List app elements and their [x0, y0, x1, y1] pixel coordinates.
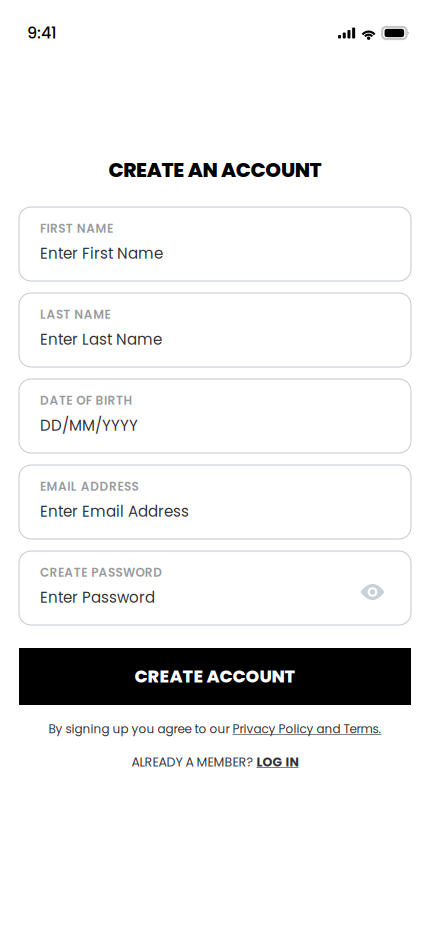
- button[interactable]: EMAIL ADDRESS: [19, 465, 411, 539]
- button[interactable]: FIRST NAME: [19, 207, 411, 281]
- staticText: Enter Email Address: [40, 501, 189, 522]
- staticText: 9:41: [27, 22, 57, 44]
- button[interactable]: Privacy Policy and Terms.: [232, 721, 381, 737]
- staticText: Privacy Policy and Terms.: [232, 721, 381, 737]
- button[interactable]: CREATE PASSWORD: [19, 551, 411, 625]
- button[interactable]: CREATE ACCOUNT: [19, 648, 411, 705]
- staticText: Enter Password: [40, 587, 155, 608]
- staticText: FIRST NAME: [40, 220, 113, 237]
- button[interactable]: LAST NAME: [19, 293, 411, 367]
- staticText: CREATE AN ACCOUNT: [108, 156, 321, 184]
- staticText: DATE OF BIRTH: [40, 392, 132, 409]
- staticText: By signing up you agree to our: [48, 721, 232, 737]
- button[interactable]: DATE OF BIRTH: [19, 379, 411, 453]
- staticText: LOG IN: [256, 753, 298, 771]
- staticText: Enter Last Name: [40, 329, 162, 350]
- staticText: CREATE PASSWORD: [40, 564, 162, 581]
- staticText: ALREADY A MEMBER?: [131, 753, 256, 771]
- staticText: LAST NAME: [40, 306, 111, 323]
- staticText: CREATE ACCOUNT: [134, 664, 295, 689]
- staticText: EMAIL ADDRESS: [40, 478, 138, 495]
- staticText: Enter First Name: [40, 243, 163, 264]
- button[interactable]: LOG IN: [256, 753, 298, 771]
- staticText: DD/MM/YYYY: [40, 415, 138, 436]
